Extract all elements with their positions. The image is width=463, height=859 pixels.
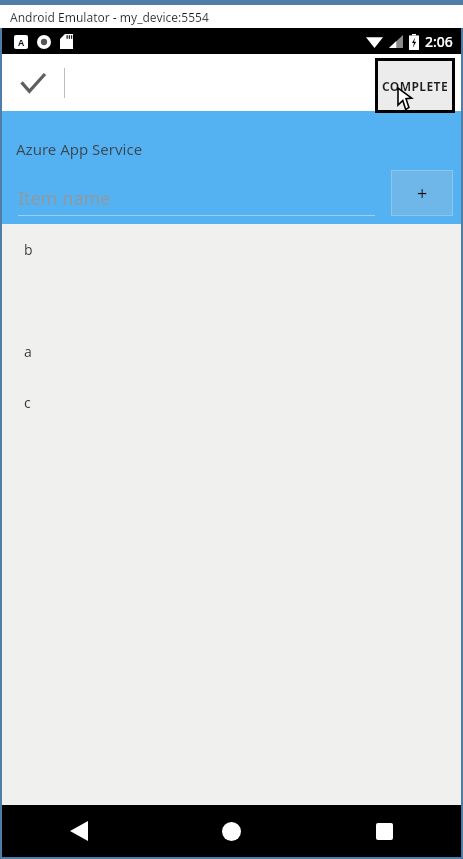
button[interactable]: Recent apps	[308, 805, 461, 857]
staticText: A	[18, 36, 25, 48]
staticText: +	[417, 181, 428, 206]
staticText: Azure App Service	[16, 139, 143, 159]
button[interactable]: Home	[155, 805, 308, 857]
staticText: Android Emulator - my_device:5554	[10, 9, 209, 25]
staticText: 2:06	[425, 32, 453, 51]
staticText: b	[24, 240, 33, 259]
staticText: Item name	[18, 186, 111, 211]
button[interactable]: c	[2, 377, 461, 428]
staticText: a	[24, 342, 32, 361]
button[interactable]: Add item	[391, 170, 453, 216]
button[interactable]: a	[2, 326, 461, 377]
staticText: c	[24, 393, 31, 412]
button[interactable]: b	[2, 224, 461, 275]
button[interactable]: COMPLETE	[378, 61, 452, 110]
button[interactable]: Back	[2, 805, 155, 857]
staticText: COMPLETE	[382, 78, 448, 94]
button[interactable]: Item name	[18, 181, 383, 215]
button[interactable]: Confirm	[2, 54, 64, 111]
